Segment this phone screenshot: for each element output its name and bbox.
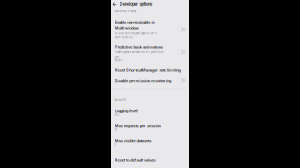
staticText: Max requests per session — [114, 123, 161, 128]
staticText: Autofill — [114, 98, 126, 102]
button[interactable]: Back — [112, 2, 117, 7]
staticText: Reset to default values — [114, 158, 155, 163]
staticText: Predictive back animations — [114, 44, 163, 49]
staticText: Max visible datasets — [114, 138, 151, 143]
button[interactable]: Reset ShortcutManager rate limiting — [111, 63, 189, 74]
button[interactable]: Toggle — [178, 50, 185, 54]
staticText: Logging level — [114, 108, 138, 113]
staticText: Developer options — [120, 2, 152, 7]
staticText: Off — [114, 114, 119, 117]
staticText: Reset ShortcutManager rate limiting — [114, 67, 181, 73]
staticText: Enable non-resizable in — [114, 20, 154, 25]
button[interactable]: Reset to default values — [111, 153, 189, 165]
staticText: 10 — [114, 129, 117, 132]
staticText: back. — [114, 55, 120, 58]
staticText: secondary display — [114, 10, 136, 13]
staticText: Allows non-resizable apps to be in — [114, 32, 156, 35]
button[interactable]: Toggle — [178, 27, 185, 31]
staticText: Enable system animations for predictive — [114, 51, 163, 54]
button[interactable]: Predictive back animations — [111, 41, 189, 57]
button[interactable]: Max requests per session — [111, 119, 189, 134]
button[interactable]: Max visible datasets — [111, 134, 189, 149]
staticText: Multi-window — [114, 25, 138, 30]
button[interactable]: Toggle — [178, 78, 185, 82]
button[interactable]: Logging level — [111, 104, 189, 119]
button[interactable]: Enable non-resizable in Multi-window — [111, 16, 189, 37]
staticText: Disable permission monitoring — [114, 78, 171, 83]
staticText: 0 — [114, 144, 115, 147]
staticText: Multi-window. — [114, 36, 134, 39]
staticText: Apps — [114, 58, 122, 61]
button[interactable]: Disable permission monitoring — [111, 74, 189, 85]
